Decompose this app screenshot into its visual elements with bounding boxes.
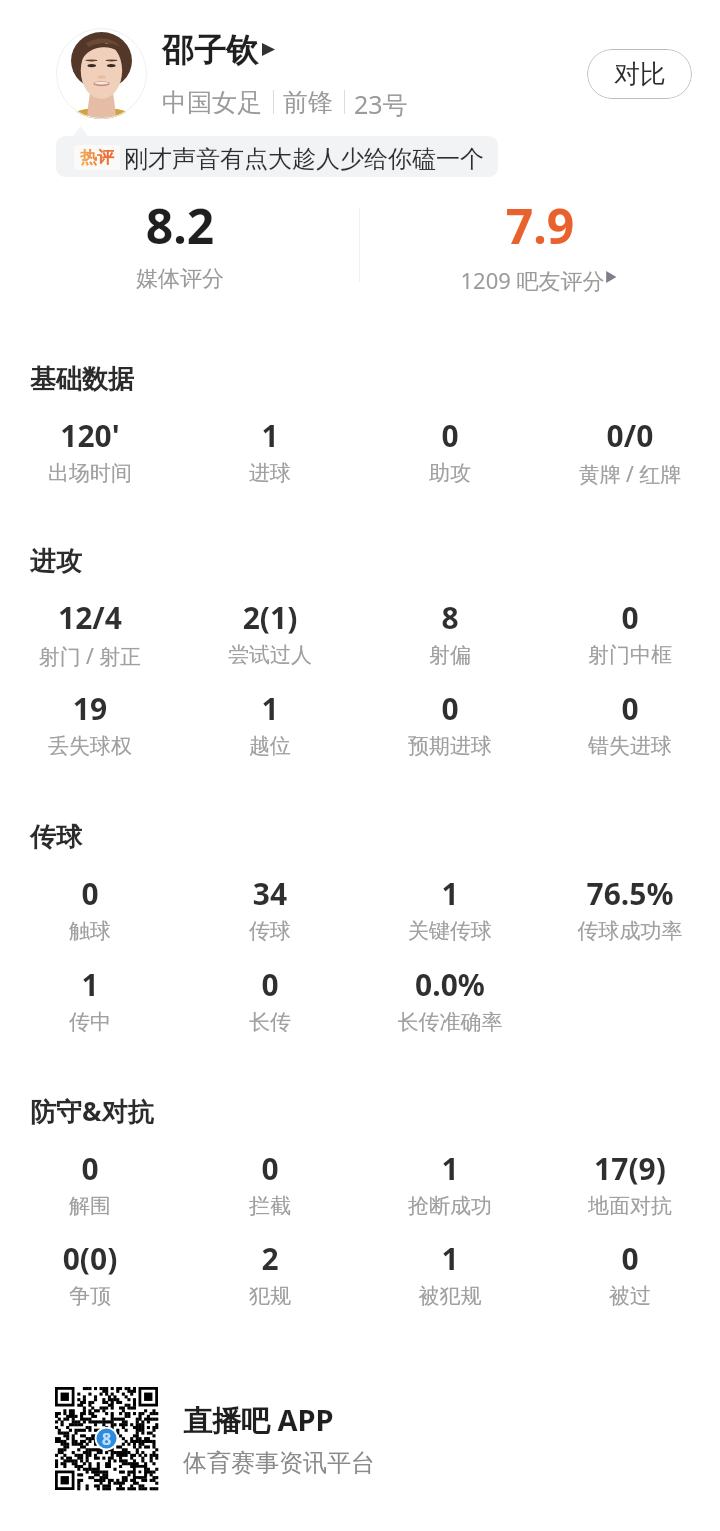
staticText: 基础数据 <box>30 363 134 396</box>
button[interactable]: 120' <box>0 407 180 486</box>
button[interactable]: 1 <box>180 407 360 486</box>
button[interactable]: 19 <box>0 680 180 759</box>
staticText: 关键传球 <box>360 918 540 944</box>
button[interactable]: 1 <box>360 1140 540 1219</box>
button[interactable] <box>0 195 360 295</box>
staticText: 长传 <box>180 1009 360 1035</box>
staticText: 邵子钦 <box>162 30 258 70</box>
staticText: 120' <box>0 415 180 456</box>
staticText: 17(9) <box>540 1148 720 1189</box>
staticText: 7.9 <box>360 193 720 258</box>
button[interactable]: 0 <box>180 956 360 1035</box>
button[interactable]: 0 <box>0 865 180 944</box>
staticText: 0 <box>360 688 540 729</box>
staticText: 解围 <box>0 1193 180 1219</box>
staticText: 1 <box>180 688 360 729</box>
button[interactable]: 2(1) <box>180 589 360 668</box>
button[interactable]: 0 <box>540 589 720 668</box>
staticText: 传球成功率 <box>540 918 720 944</box>
staticText: 长传准确率 <box>360 1009 540 1035</box>
staticText: 0 <box>180 1148 360 1189</box>
button[interactable]: 0 <box>180 1140 360 1219</box>
button[interactable]: QR code to download app <box>55 1387 158 1490</box>
staticText: 0 <box>540 597 720 638</box>
button[interactable] <box>360 195 720 295</box>
staticText: 拦截 <box>180 1193 360 1219</box>
button[interactable]: 17(9) <box>540 1140 720 1219</box>
button[interactable]: 0/0 <box>540 407 720 486</box>
staticText: 射门中框 <box>540 642 720 668</box>
staticText: 0 <box>360 415 540 456</box>
staticText: 错失进球 <box>540 733 720 759</box>
staticText: 0(0) <box>0 1238 180 1279</box>
staticText: 防守&对抗 <box>30 1093 154 1129</box>
button[interactable]: 1 <box>180 680 360 759</box>
staticText: 2(1) <box>180 597 360 638</box>
staticText: 进攻 <box>30 545 82 578</box>
button[interactable]: 0 <box>0 1140 180 1219</box>
button[interactable]: 邵子钦 <box>162 28 280 68</box>
button[interactable]: 12/4 <box>0 589 180 668</box>
staticText: 0.0% <box>360 964 540 1005</box>
staticText: 前锋 <box>283 87 333 118</box>
staticText: 0/0 <box>540 415 720 456</box>
button[interactable]: 0 <box>360 680 540 759</box>
staticText: 直播吧 APP <box>183 1400 334 1440</box>
staticText: 0 <box>0 873 180 914</box>
staticText: 76.5% <box>540 873 720 914</box>
staticText: 犯规 <box>180 1283 360 1309</box>
staticText: 被过 <box>540 1283 720 1309</box>
staticText: 传球 <box>30 821 82 854</box>
staticText: 尝试过人 <box>180 642 360 668</box>
staticText: 12/4 <box>0 597 180 638</box>
staticText: 19 <box>0 688 180 729</box>
button[interactable]: 0 <box>540 1230 720 1309</box>
staticText: 射门 / 射正 <box>0 642 180 668</box>
button[interactable]: 0 <box>540 680 720 759</box>
staticText: 被犯规 <box>360 1283 540 1309</box>
staticText: 0 <box>540 1238 720 1279</box>
staticText: 传中 <box>0 1009 180 1035</box>
button[interactable]: 0.0% <box>360 956 540 1035</box>
staticText: 体育赛事资讯平台 <box>183 1448 375 1478</box>
staticText: 出场时间 <box>0 460 180 486</box>
staticText: 触球 <box>0 918 180 944</box>
button[interactable]: 0(0) <box>0 1230 180 1309</box>
staticText: 中国女足 <box>162 87 262 118</box>
button[interactable]: 0 <box>360 407 540 486</box>
button[interactable]: Player avatar <box>56 28 147 119</box>
staticText: 黄牌 / 红牌 <box>540 460 720 486</box>
button[interactable]: 1 <box>360 865 540 944</box>
button[interactable]: 34 <box>180 865 360 944</box>
staticText: 1 <box>180 415 360 456</box>
button[interactable]: 2 <box>180 1230 360 1309</box>
staticText: 刚才声音有点大趁人少给你磕一个 <box>124 144 484 174</box>
staticText: 34 <box>180 873 360 914</box>
staticText: 8.2 <box>0 193 360 258</box>
button[interactable]: 对比 <box>587 49 692 99</box>
staticText: 抢断成功 <box>360 1193 540 1219</box>
button[interactable]: 1 <box>0 956 180 1035</box>
button[interactable]: 8 <box>360 589 540 668</box>
staticText: 丢失球权 <box>0 733 180 759</box>
staticText: 2 <box>180 1238 360 1279</box>
staticText: 地面对抗 <box>540 1193 720 1219</box>
staticText: 1 <box>360 1238 540 1279</box>
staticText: 传球 <box>180 918 360 944</box>
staticText: 1 <box>0 964 180 1005</box>
button[interactable]: 76.5% <box>540 865 720 944</box>
button[interactable] <box>56 136 498 177</box>
staticText: 助攻 <box>360 460 540 486</box>
staticText: 8 <box>102 1428 112 1450</box>
button[interactable]: 1 <box>360 1230 540 1309</box>
staticText: 0 <box>0 1148 180 1189</box>
staticText: 热评 <box>80 147 114 168</box>
staticText: 越位 <box>180 733 360 759</box>
staticText: 争顶 <box>0 1283 180 1309</box>
staticText: 媒体评分 <box>0 265 360 293</box>
staticText: 进球 <box>180 460 360 486</box>
staticText: 对比 <box>614 58 666 91</box>
staticText: 射偏 <box>360 642 540 668</box>
staticText: 1209 吧友评分 <box>360 265 705 295</box>
staticText: 预期进球 <box>360 733 540 759</box>
